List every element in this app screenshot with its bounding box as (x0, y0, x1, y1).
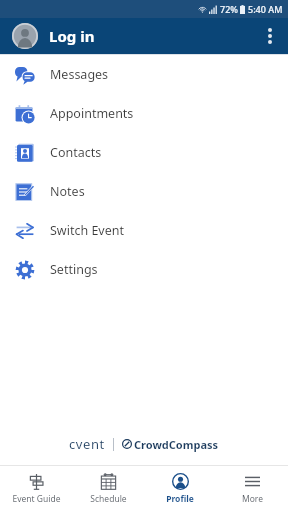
button[interactable]: Contacts (0, 133, 288, 172)
button[interactable]: Notes (0, 172, 288, 211)
button[interactable]: Settings (0, 250, 288, 289)
staticText: CrowdCompass (134, 437, 219, 452)
button[interactable]: Log in (10, 21, 97, 51)
staticText: Log in (49, 26, 95, 46)
staticText: Schedule (90, 493, 127, 505)
button[interactable]: Schedule (72, 466, 144, 512)
button[interactable]: Profile (144, 466, 216, 512)
button[interactable]: Event Guide (0, 466, 72, 512)
staticText: Messages (50, 66, 109, 83)
staticText: 72% (220, 3, 238, 15)
staticText: Profile (166, 493, 194, 505)
staticText: Switch Event (50, 222, 124, 239)
staticText: cvent (69, 435, 105, 453)
button[interactable]: Appointments (0, 94, 288, 133)
button[interactable]: More options (252, 18, 288, 54)
button[interactable]: Messages (0, 55, 288, 94)
staticText: Settings (50, 261, 98, 278)
staticText: Notes (50, 183, 85, 200)
button[interactable]: Switch Event (0, 211, 288, 250)
button[interactable]: More (216, 466, 288, 512)
staticText: More (242, 493, 263, 505)
staticText: Contacts (50, 144, 102, 161)
staticText: Appointments (50, 105, 134, 122)
staticText: Event Guide (12, 493, 61, 505)
staticText: 5:40 AM (248, 3, 283, 15)
